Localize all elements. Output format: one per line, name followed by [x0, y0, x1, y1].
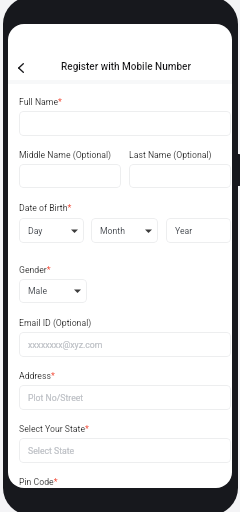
staticText: Year [175, 226, 193, 236]
staticText: Full Name* [19, 97, 62, 108]
staticText: Gender* [19, 265, 51, 276]
staticText: Pin Code* [19, 477, 58, 488]
staticText: Male [28, 286, 48, 296]
button[interactable]: Day [19, 218, 84, 243]
staticText: Email ID (Optional) [19, 318, 92, 328]
staticText: Plot No/Street [28, 393, 84, 403]
button[interactable]: Select State [19, 438, 231, 463]
staticText: Date of Birth* [19, 203, 72, 214]
staticText: xxxxxxxx@xyz.com [28, 340, 103, 350]
staticText: Month [100, 226, 125, 236]
button[interactable] [19, 164, 121, 188]
button[interactable]: Year [166, 218, 231, 243]
staticText: Day [28, 226, 43, 236]
staticText: Address* [19, 371, 55, 382]
staticText: Select State [28, 446, 75, 456]
staticText: Middle Name (Optional) [19, 150, 112, 160]
staticText: Last Name (Optional) [129, 150, 212, 160]
staticText: Register with Mobile Number [61, 61, 191, 73]
button[interactable]: Back [9, 57, 33, 79]
button[interactable]: Male [19, 279, 87, 303]
button[interactable]: Month [91, 218, 158, 243]
button[interactable]: Plot No/Street [19, 385, 231, 410]
button[interactable] [19, 111, 231, 136]
button[interactable]: xxxxxxxx@xyz.com [19, 332, 231, 357]
staticText: Select Your State* [19, 424, 89, 435]
button[interactable] [129, 164, 231, 188]
